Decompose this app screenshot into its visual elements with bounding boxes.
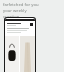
button[interactable] [5, 19, 35, 21]
staticText: farfetched for you [3, 2, 39, 8]
button[interactable]: Black handbag product [5, 36, 19, 72]
staticText: your weekly [3, 8, 27, 14]
staticText: curation [3, 14, 20, 20]
button[interactable]: Brand logo [4, 17, 36, 72]
button[interactable]: Beige coat product [20, 36, 35, 72]
